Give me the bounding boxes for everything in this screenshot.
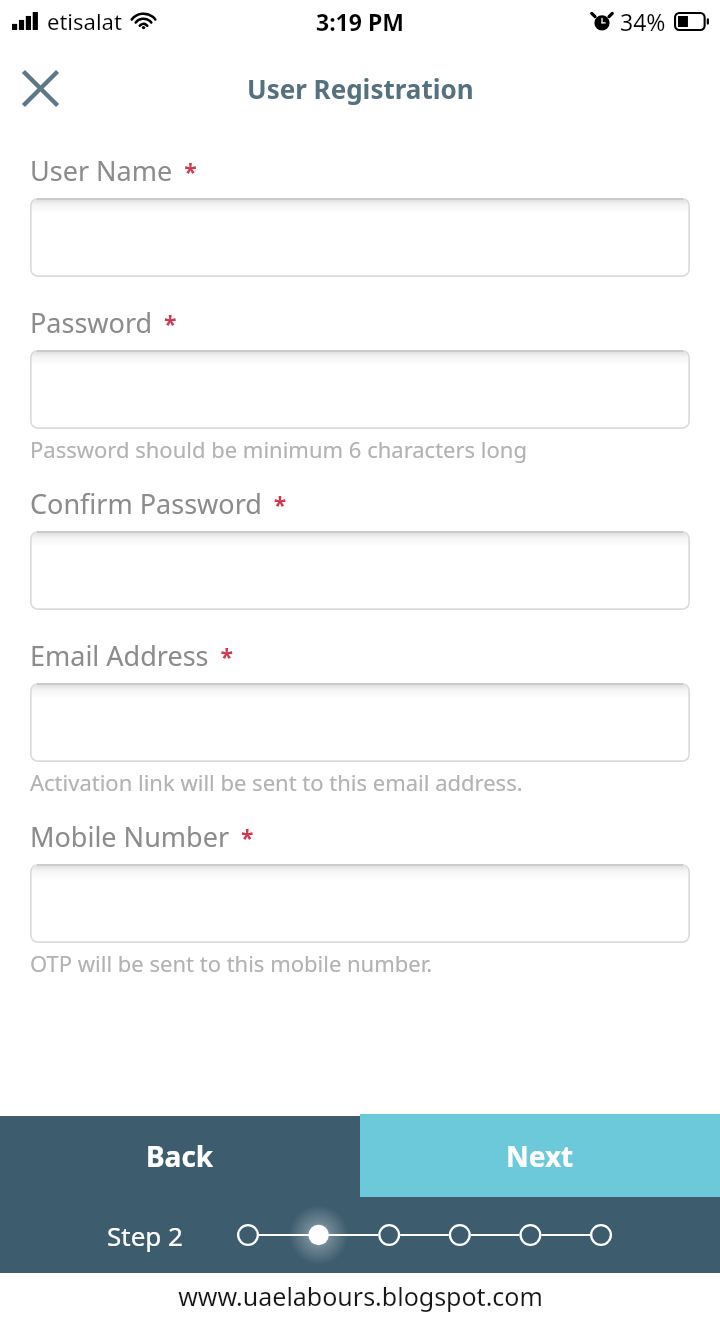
staticText: Password *	[30, 304, 177, 341]
staticText: User Name *	[30, 152, 197, 189]
staticText: Next	[506, 1137, 574, 1175]
staticText: Activation link will be sent to this ema…	[30, 767, 523, 797]
button[interactable]: Next	[360, 1114, 720, 1197]
staticText: www.uaelabours.blogspot.com	[178, 1279, 543, 1313]
staticText: etisalat	[47, 6, 122, 36]
staticText: Back	[146, 1137, 214, 1175]
staticText: Confirm Password *	[30, 485, 287, 522]
button[interactable]	[30, 198, 690, 277]
staticText: 3:19 PM	[316, 6, 404, 37]
staticText: OTP will be sent to this mobile number.	[30, 948, 433, 978]
button[interactable]	[30, 864, 690, 943]
staticText: 34%	[620, 6, 666, 37]
button[interactable]	[30, 683, 690, 762]
staticText: User Registration	[247, 71, 474, 106]
staticText: Mobile Number *	[30, 818, 254, 855]
staticText: Step 2	[107, 1218, 183, 1253]
staticText: Password should be minimum 6 characters …	[30, 434, 527, 464]
button[interactable]: Back	[0, 1114, 360, 1197]
button[interactable]: Close	[10, 58, 70, 118]
button[interactable]	[30, 350, 690, 429]
button[interactable]	[30, 531, 690, 610]
staticText: Email Address *	[30, 637, 233, 674]
